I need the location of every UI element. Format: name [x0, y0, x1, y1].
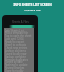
- staticText: AND FILE LIST: [24, 8, 41, 11]
- staticText: Share to contacts: [5, 43, 27, 47]
- staticText: Sheets & Files: [12, 20, 29, 24]
- staticText: Check new entries: [5, 46, 28, 50]
- staticText: Pick a template file: [5, 31, 28, 35]
- staticText: Saved locally now: [5, 52, 27, 56]
- staticText: Ready to export: [5, 40, 25, 44]
- staticText: Info Sheets List: [5, 29, 24, 33]
- staticText: Sorted by date: [5, 60, 23, 64]
- staticText: Nothing to update: [5, 63, 28, 67]
- staticText: Done for today: [5, 69, 24, 72]
- staticText: Last sync 12:04: [5, 37, 24, 41]
- staticText: INFO SHEETS LIST SCREEN: [13, 3, 52, 7]
- staticText: Tap to open the sheet: [5, 34, 32, 38]
- staticText: Review changes: [5, 66, 25, 70]
- staticText: Archive old items: [5, 49, 26, 53]
- staticText: Remove duplicates: [5, 58, 28, 62]
- staticText: Backup complete: [5, 55, 27, 59]
